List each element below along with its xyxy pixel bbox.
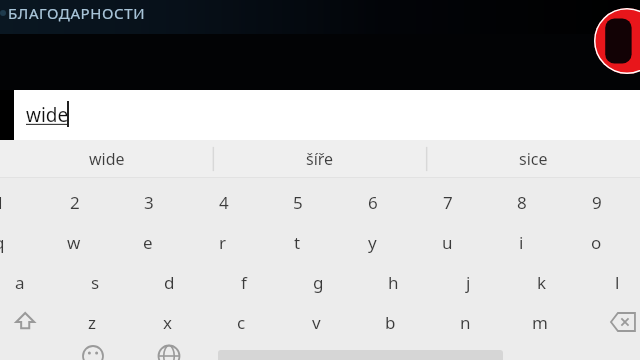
staticText: i [519, 231, 524, 254]
button[interactable]: b [353, 302, 427, 342]
staticText: БЛАГОДАРНОСТИ [8, 3, 146, 23]
button[interactable]: y [335, 222, 409, 262]
staticText: a [15, 271, 25, 294]
staticText: m [532, 311, 548, 334]
button[interactable]: w [37, 222, 111, 262]
button[interactable]: g [281, 262, 355, 302]
button[interactable]: 5 [261, 182, 335, 222]
staticText: u [442, 231, 453, 254]
button[interactable]: 4 [187, 182, 261, 222]
button[interactable]: šíře [213, 140, 426, 178]
staticText: 3 [144, 191, 154, 214]
staticText: 4 [219, 191, 229, 214]
staticText: v [312, 311, 321, 334]
staticText: c [237, 311, 246, 334]
staticText: e [143, 231, 153, 254]
button[interactable]: Emoji [70, 344, 116, 360]
staticText: g [313, 271, 324, 294]
staticText: s [91, 271, 100, 294]
button[interactable]: a [0, 262, 57, 302]
staticText: 2 [70, 191, 80, 214]
staticText: y [368, 231, 377, 254]
button[interactable]: o [559, 222, 633, 262]
button[interactable]: l [580, 262, 640, 302]
staticText: r [219, 231, 227, 254]
staticText: t [294, 231, 301, 254]
staticText: x [163, 311, 172, 334]
staticText: šíře [306, 148, 334, 170]
button[interactable]: Shift [0, 302, 42, 342]
staticText: k [537, 271, 547, 294]
button[interactable]: u [410, 222, 484, 262]
button[interactable]: s [58, 262, 132, 302]
button[interactable]: f [207, 262, 281, 302]
staticText: w [67, 231, 81, 254]
staticText: q [0, 231, 5, 254]
button[interactable]: e [111, 222, 185, 262]
staticText: 1 [0, 191, 5, 214]
staticText: d [164, 271, 175, 294]
button[interactable]: t [260, 222, 334, 262]
staticText: z [88, 311, 96, 334]
button[interactable]: c [204, 302, 278, 342]
button[interactable]: x [130, 302, 204, 342]
staticText: wide [89, 148, 125, 170]
button[interactable]: wide [0, 140, 213, 178]
staticText: 6 [368, 191, 378, 214]
staticText: h [388, 271, 399, 294]
button[interactable]: j [431, 262, 505, 302]
staticText: b [385, 311, 396, 334]
staticText: 8 [517, 191, 527, 214]
staticText: l [615, 271, 620, 294]
button[interactable]: 7 [411, 182, 485, 222]
staticText: sice [519, 148, 548, 170]
button[interactable]: d [132, 262, 206, 302]
button[interactable]: Backspace [598, 302, 640, 342]
button[interactable]: q [0, 222, 36, 262]
staticText: f [241, 271, 247, 294]
button[interactable]: 1 [0, 182, 37, 222]
button[interactable]: wide [14, 90, 640, 140]
button[interactable]: 6 [336, 182, 410, 222]
staticText: 5 [293, 191, 303, 214]
staticText: 9 [592, 191, 602, 214]
button[interactable]: i [484, 222, 558, 262]
button[interactable]: 8 [485, 182, 559, 222]
button[interactable]: z [55, 302, 129, 342]
staticText: o [591, 231, 602, 254]
staticText: n [460, 311, 471, 334]
staticText: wide [26, 102, 69, 128]
button[interactable]: 9 [560, 182, 634, 222]
button[interactable]: r [186, 222, 260, 262]
button[interactable]: 2 [38, 182, 112, 222]
button[interactable]: n [428, 302, 502, 342]
button[interactable]: Record indicator [594, 8, 640, 74]
button[interactable]: Change keyboard language [146, 344, 192, 360]
button[interactable]: v [279, 302, 353, 342]
staticText: j [466, 271, 471, 294]
button[interactable]: m [503, 302, 577, 342]
button[interactable]: h [356, 262, 430, 302]
button[interactable]: 3 [112, 182, 186, 222]
button[interactable]: k [505, 262, 579, 302]
button[interactable]: sice [427, 140, 640, 178]
staticText: 7 [443, 191, 453, 214]
